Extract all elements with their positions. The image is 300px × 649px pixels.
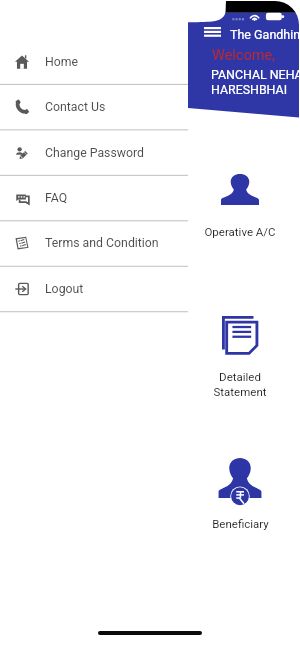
button[interactable]: Open navigation menu <box>204 27 222 37</box>
staticText: Change Password <box>45 146 145 160</box>
staticText: Beneficiary <box>212 517 269 530</box>
staticText: Welcome, <box>212 47 275 64</box>
button[interactable]: Detailed Statement <box>189 316 291 399</box>
staticText: PANCHAL NEHA HARESHBHAI <box>211 67 300 97</box>
button[interactable]: Contact Us <box>0 84 188 129</box>
button[interactable]: Operative A/C <box>189 171 291 238</box>
staticText: Terms and Condition <box>45 236 159 250</box>
button[interactable]: Terms and Condition <box>0 220 188 265</box>
button[interactable]: Beneficiary <box>189 454 291 530</box>
staticText: Contact Us <box>45 100 106 114</box>
button[interactable]: Logout <box>0 266 188 311</box>
staticText: Logout <box>45 282 84 296</box>
button[interactable]: FAQ <box>0 175 188 220</box>
button[interactable]: Home <box>0 39 188 84</box>
staticText: Home <box>45 55 79 69</box>
staticText: The Gandhinagar <box>230 27 300 42</box>
staticText: Operative A/C <box>204 225 276 238</box>
button[interactable]: Change Password <box>0 130 188 175</box>
staticText: FAQ <box>45 191 68 205</box>
staticText: Detailed Statement <box>213 370 267 399</box>
